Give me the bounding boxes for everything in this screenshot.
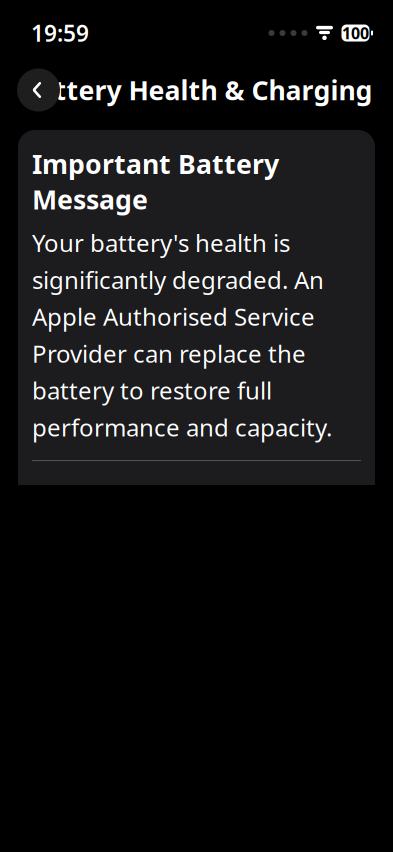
staticText: Your battery's health is significantly d… bbox=[32, 227, 332, 443]
staticText: Important Battery Message bbox=[32, 146, 279, 217]
button[interactable]: Find Your Service Options bbox=[32, 479, 361, 550]
staticText: 100 bbox=[342, 22, 369, 44]
staticText: 19:59 bbox=[31, 18, 89, 48]
staticText: Find Your Service Options bbox=[32, 479, 246, 550]
button[interactable]: Back bbox=[17, 68, 60, 111]
staticText: Battery Health & Charging bbox=[20, 72, 372, 108]
